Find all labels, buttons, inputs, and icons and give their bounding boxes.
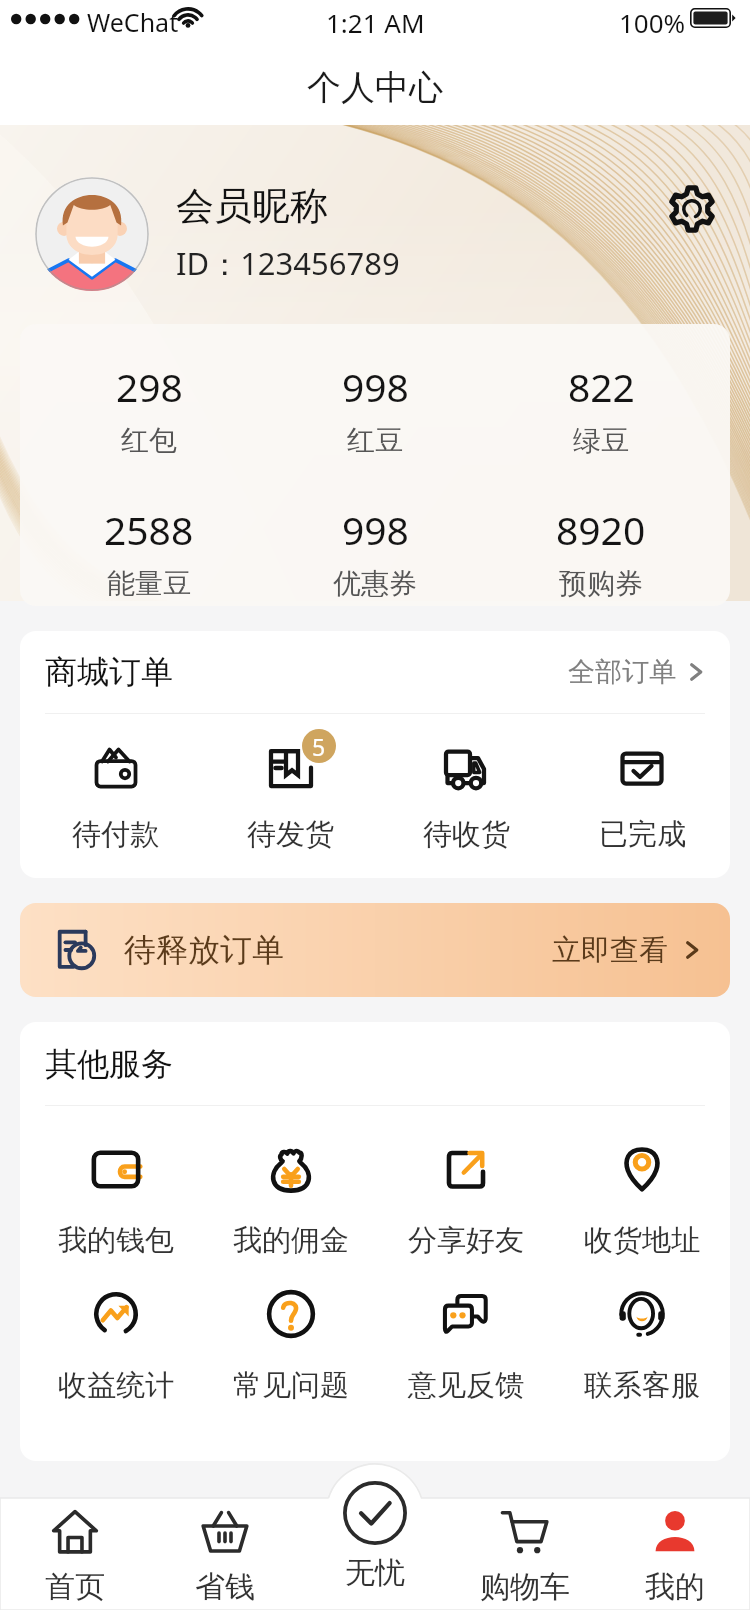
staticText: 待释放订单 <box>124 930 284 970</box>
staticText: 首页 <box>45 1568 105 1606</box>
staticText: 省钱 <box>195 1568 255 1606</box>
button[interactable]: 省钱 <box>150 1464 300 1610</box>
button[interactable]: 我的钱包 <box>28 1142 203 1259</box>
staticText: 待付款 <box>72 816 159 853</box>
staticText: 收益统计 <box>58 1367 174 1404</box>
button[interactable]: 全部订单 <box>568 645 708 699</box>
staticText: 意见反馈 <box>408 1367 524 1404</box>
button[interactable]: 收益统计 <box>28 1287 203 1404</box>
staticText: 998 <box>342 503 409 556</box>
staticText: 待发货 <box>247 816 334 853</box>
button[interactable]: 无忧 <box>300 1464 450 1610</box>
button[interactable]: 998 <box>262 503 488 601</box>
button[interactable]: 常见问题 <box>203 1287 378 1404</box>
staticText: 立即查看 <box>552 932 668 969</box>
staticText: 1:21 AM <box>326 5 425 40</box>
button[interactable]: 待付款 <box>28 740 203 853</box>
button[interactable]: 已完成 <box>554 740 730 853</box>
staticText: 预购券 <box>559 566 643 601</box>
button[interactable]: 意见反馈 <box>378 1287 554 1404</box>
staticText: 998 <box>342 360 409 413</box>
button[interactable]: 822 <box>488 360 714 458</box>
button[interactable]: 298 <box>36 360 262 458</box>
button[interactable]: 待释放订单 <box>20 903 730 997</box>
staticText: 分享好友 <box>408 1222 524 1259</box>
button[interactable]: 998 <box>262 360 488 458</box>
staticText: ID：123456789 <box>176 242 400 284</box>
staticText: 100% <box>619 5 686 40</box>
button[interactable]: 8920 <box>488 503 714 601</box>
staticText: 我的 <box>645 1568 705 1606</box>
staticText: 2588 <box>104 503 194 556</box>
button[interactable]: 收货地址 <box>554 1142 730 1259</box>
button[interactable]: Settings <box>664 181 720 237</box>
staticText: 个人中心 <box>307 66 443 109</box>
staticText: 298 <box>116 360 183 413</box>
button[interactable] <box>35 177 149 291</box>
button[interactable]: 5 <box>203 740 378 853</box>
staticText: 我的佣金 <box>233 1222 349 1259</box>
staticText: 8920 <box>556 503 646 556</box>
staticText: 商城订单 <box>45 652 173 692</box>
staticText: 红包 <box>121 423 177 458</box>
staticText: 全部订单 <box>568 655 676 689</box>
staticText: 我的钱包 <box>58 1222 174 1259</box>
staticText: 已完成 <box>599 816 686 853</box>
staticText: 5 <box>312 731 326 762</box>
staticText: 常见问题 <box>233 1367 349 1404</box>
staticText: 无忧 <box>345 1554 405 1592</box>
button[interactable]: 我的 <box>600 1464 750 1610</box>
staticText: WeChat <box>87 5 179 39</box>
button[interactable]: 首页 <box>0 1464 150 1610</box>
staticText: 收货地址 <box>584 1222 700 1259</box>
staticText: 联系客服 <box>584 1367 700 1404</box>
button[interactable]: 分享好友 <box>378 1142 554 1259</box>
button[interactable]: 购物车 <box>450 1464 600 1610</box>
staticText: 其他服务 <box>45 1044 173 1084</box>
button[interactable]: 2588 <box>36 503 262 601</box>
staticText: 能量豆 <box>107 566 191 601</box>
button[interactable]: 我的佣金 <box>203 1142 378 1259</box>
staticText: 优惠券 <box>333 566 417 601</box>
staticText: 红豆 <box>347 423 403 458</box>
staticText: 绿豆 <box>573 423 629 458</box>
button[interactable]: 联系客服 <box>554 1287 730 1404</box>
staticText: 会员昵称 <box>176 182 328 230</box>
staticText: 822 <box>568 360 635 413</box>
staticText: 购物车 <box>480 1568 570 1606</box>
staticText: 待收货 <box>423 816 510 853</box>
button[interactable]: 待收货 <box>378 740 554 853</box>
